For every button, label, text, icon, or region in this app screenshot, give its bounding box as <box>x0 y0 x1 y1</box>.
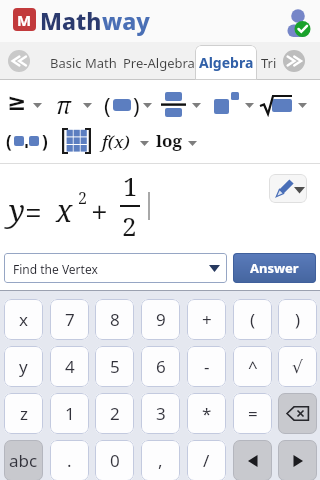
staticText: + <box>202 308 212 331</box>
button[interactable]: ( <box>102 88 156 120</box>
staticText: M <box>17 10 32 30</box>
button[interactable] <box>278 393 317 434</box>
button[interactable]: = <box>233 393 272 434</box>
button[interactable]: log <box>154 126 202 158</box>
staticText: + <box>91 191 108 232</box>
staticText: 2 <box>78 187 87 209</box>
button[interactable]: 2 <box>95 393 134 434</box>
button[interactable]: - <box>187 346 226 387</box>
staticText: way <box>102 5 150 36</box>
button[interactable]: Find the Vertex <box>4 253 227 283</box>
button[interactable]: 0 <box>95 440 134 480</box>
button[interactable] <box>158 88 204 120</box>
staticText: 4 <box>65 355 75 378</box>
staticText: y <box>19 355 28 378</box>
staticText: / <box>203 449 210 472</box>
button[interactable]: ( <box>4 126 54 158</box>
button[interactable]: 8 <box>95 299 134 340</box>
staticText: = <box>25 192 42 233</box>
staticText: 1 <box>65 402 75 425</box>
staticText: Algebra <box>199 53 254 72</box>
staticText: ) <box>42 130 48 153</box>
staticText: z <box>20 402 28 425</box>
staticText: 9 <box>156 308 166 331</box>
staticText: ) <box>133 90 140 120</box>
button[interactable]: Pre-Algebra <box>123 54 195 72</box>
staticText: * <box>202 402 212 425</box>
staticText: Math <box>40 5 102 36</box>
button[interactable]: 7 <box>50 299 89 340</box>
button[interactable]: 1 <box>50 393 89 434</box>
staticText: ( <box>6 130 12 153</box>
staticText: ( <box>104 90 111 120</box>
staticText: 5 <box>110 355 120 378</box>
button[interactable]: 3 <box>141 393 180 434</box>
button[interactable]: x <box>4 299 43 340</box>
button[interactable]: ≥ <box>6 88 48 120</box>
staticText: 2 <box>122 208 137 243</box>
staticText: - <box>204 355 210 378</box>
button[interactable]: 5 <box>95 346 134 387</box>
button[interactable] <box>8 50 30 72</box>
staticText: 6 <box>156 355 166 378</box>
staticText: Answer <box>250 259 299 277</box>
button[interactable] <box>233 440 272 480</box>
staticText: ≥ <box>7 89 27 116</box>
staticText: 1 <box>123 168 138 203</box>
staticText: √ <box>292 357 303 377</box>
button[interactable]: f(x) <box>100 126 154 158</box>
button[interactable]: π <box>54 88 98 120</box>
button[interactable]: y <box>4 346 43 387</box>
button[interactable]: Tri <box>261 54 277 72</box>
staticText: 0 <box>110 449 120 472</box>
button[interactable]: ) <box>278 299 317 340</box>
button[interactable]: / <box>187 440 226 480</box>
staticText: y <box>9 190 25 231</box>
staticText: ) <box>295 308 301 331</box>
button[interactable] <box>283 50 305 72</box>
button[interactable]: * <box>187 393 226 434</box>
button[interactable] <box>269 174 307 203</box>
staticText: = <box>248 402 258 425</box>
staticText: ( <box>250 308 256 331</box>
staticText: 7 <box>65 308 75 331</box>
staticText: ^ <box>248 355 258 378</box>
button[interactable]: ( <box>233 299 272 340</box>
button[interactable]: z <box>4 393 43 434</box>
button[interactable]: Answer <box>233 253 316 283</box>
button[interactable] <box>278 440 317 480</box>
staticText: f(x) <box>102 130 130 153</box>
staticText: 2 <box>110 402 120 425</box>
staticText: 8 <box>110 308 120 331</box>
button[interactable]: 6 <box>141 346 180 387</box>
button[interactable]: M <box>13 8 36 31</box>
staticText: abc <box>9 449 38 472</box>
button[interactable]: . <box>50 440 89 480</box>
staticText: Find the Vertex <box>13 261 98 277</box>
button[interactable]: abc <box>4 440 43 480</box>
staticText: 3 <box>156 402 166 425</box>
button[interactable] <box>258 88 310 120</box>
button[interactable]: ^ <box>233 346 272 387</box>
button[interactable]: 4 <box>50 346 89 387</box>
staticText: π <box>56 89 71 120</box>
staticText: log <box>156 129 182 152</box>
staticText: . <box>67 449 72 472</box>
staticText: x <box>19 308 28 331</box>
button[interactable]: Basic Math <box>50 54 117 72</box>
button[interactable]: 9 <box>141 299 180 340</box>
button[interactable] <box>58 126 96 158</box>
button[interactable] <box>210 88 258 120</box>
staticText: , <box>158 449 163 472</box>
button[interactable]: √ <box>278 346 317 387</box>
button[interactable] <box>284 6 316 38</box>
staticText: x <box>56 190 73 231</box>
button[interactable]: , <box>141 440 180 480</box>
button[interactable]: + <box>187 299 226 340</box>
button[interactable]: Algebra <box>195 45 257 80</box>
